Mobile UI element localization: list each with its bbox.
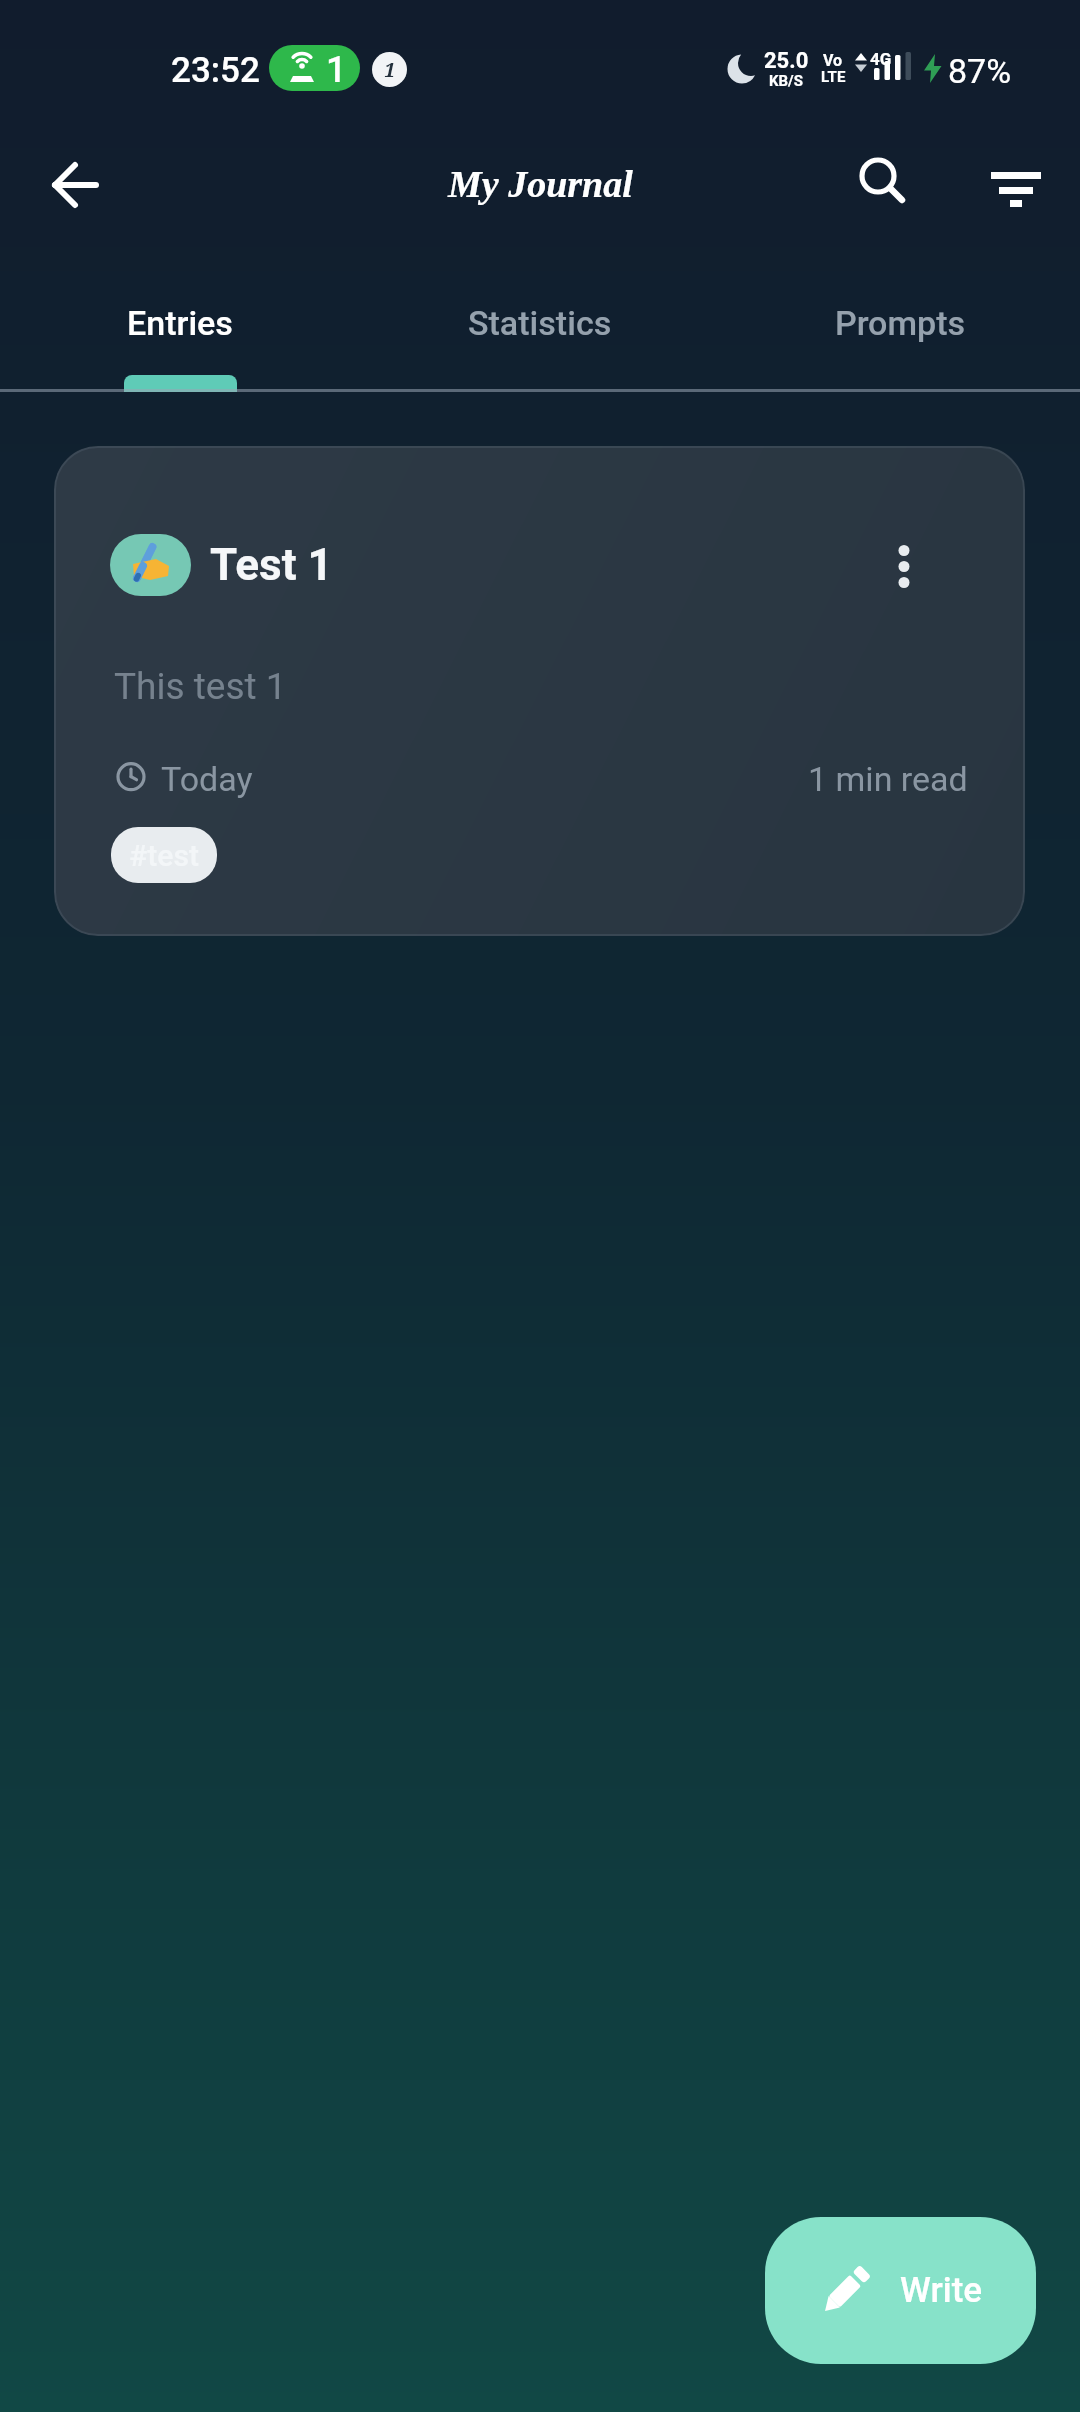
- staticText: 1: [326, 49, 347, 91]
- staticText: 87%: [948, 51, 1012, 91]
- button[interactable]: [978, 145, 1054, 221]
- staticText: Vo: [823, 51, 843, 70]
- staticText: Statistics: [468, 303, 612, 343]
- button[interactable]: Entries: [0, 280, 360, 392]
- button[interactable]: Write: [765, 2217, 1036, 2364]
- staticText: Today: [161, 759, 253, 799]
- button[interactable]: Statistics: [360, 280, 720, 392]
- staticText: My Journal: [448, 163, 633, 205]
- staticText: 1 min read: [808, 759, 968, 799]
- button[interactable]: [864, 526, 944, 606]
- staticText: 25.0: [764, 48, 809, 74]
- staticText: Entries: [127, 303, 233, 343]
- staticText: 23:52: [171, 50, 260, 91]
- button[interactable]: Prompts: [720, 280, 1080, 392]
- button[interactable]: Test 1: [54, 446, 1025, 936]
- staticText: LTE: [821, 68, 846, 86]
- button[interactable]: [36, 145, 116, 225]
- button[interactable]: #test: [111, 827, 217, 883]
- staticText: #test: [129, 838, 199, 873]
- staticText: Write: [900, 2270, 983, 2311]
- staticText: This test 1: [114, 665, 287, 708]
- staticText: Test 1: [210, 539, 333, 591]
- staticText: 4G: [870, 49, 892, 69]
- staticText: Prompts: [835, 303, 966, 343]
- button[interactable]: [845, 145, 921, 221]
- staticText: KB/S: [769, 72, 803, 90]
- staticText: 1: [384, 56, 396, 83]
